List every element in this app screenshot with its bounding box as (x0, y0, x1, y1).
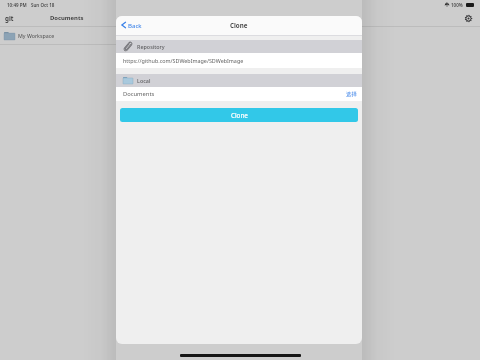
staticText: Sun Oct 18 (31, 2, 55, 8)
staticText: 100% (451, 2, 463, 8)
staticText: Local (137, 77, 151, 84)
button[interactable]: Back (121, 21, 142, 29)
staticText: https://github.com/SDWebImage/SDWebImage (123, 57, 244, 64)
staticText: 选择 (346, 91, 357, 98)
staticText: git (5, 14, 14, 22)
staticText: Clone (230, 21, 248, 29)
staticText: Back (128, 21, 142, 29)
button[interactable]: Documents (116, 87, 362, 101)
staticText: My Workspace (18, 32, 55, 39)
staticText: Documents (123, 90, 155, 98)
button[interactable]: Clone (120, 108, 358, 122)
staticText: Repository (137, 43, 165, 50)
button[interactable]: My Workspace (0, 27, 116, 44)
button[interactable]: Settings (463, 13, 474, 24)
button[interactable]: Git (5, 14, 14, 22)
staticText: 10:49 PM (7, 2, 27, 8)
staticText: Clone (231, 111, 248, 120)
staticText: Documents (50, 14, 84, 22)
